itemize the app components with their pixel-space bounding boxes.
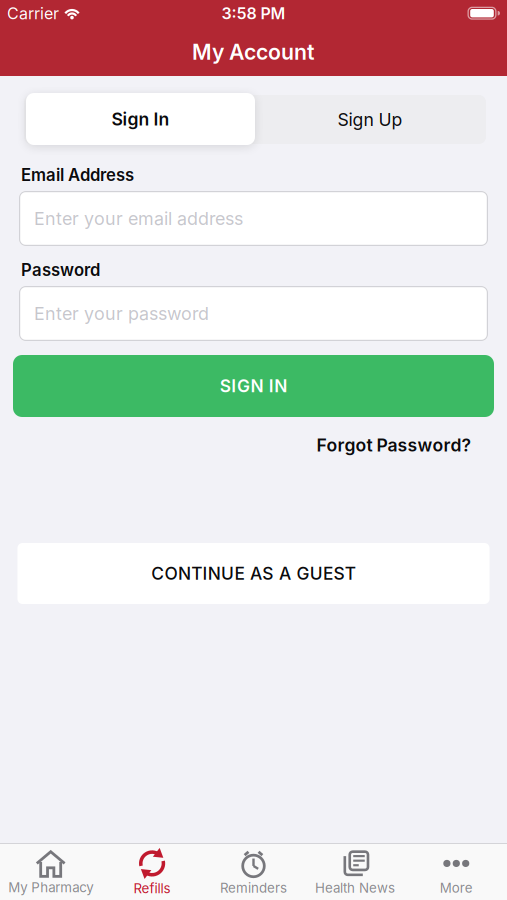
button[interactable]: Password bbox=[19, 286, 488, 341]
button[interactable]: CONTINUE AS A GUEST bbox=[17, 543, 489, 604]
button[interactable]: Email Address bbox=[19, 191, 488, 246]
staticText: Enter your password bbox=[34, 303, 209, 324]
staticText: Password bbox=[21, 260, 100, 280]
button[interactable]: Sign Up bbox=[255, 95, 484, 144]
staticText: Sign In bbox=[111, 108, 169, 130]
button[interactable]: Reminders bbox=[203, 845, 304, 899]
staticText: My Pharmacy bbox=[8, 879, 93, 895]
staticText: Sign Up bbox=[337, 109, 402, 130]
staticText: Refills bbox=[134, 880, 171, 896]
staticText: SIGN IN bbox=[220, 375, 287, 396]
staticText: Forgot Password? bbox=[316, 434, 471, 456]
button[interactable]: Refills bbox=[101, 845, 203, 899]
staticText: Enter your email address bbox=[34, 208, 243, 229]
staticText: Health News bbox=[315, 880, 395, 896]
button[interactable]: Sign In bbox=[26, 93, 255, 145]
button[interactable]: My Pharmacy bbox=[0, 845, 101, 899]
button[interactable]: More bbox=[406, 845, 507, 899]
staticText: 3:58 PM bbox=[221, 4, 285, 23]
button[interactable]: Forgot Password? bbox=[316, 434, 471, 456]
button[interactable]: SIGN IN bbox=[13, 355, 494, 417]
staticText: CONTINUE AS A GUEST bbox=[151, 563, 356, 584]
staticText: My Account bbox=[192, 39, 315, 65]
staticText: Email Address bbox=[21, 165, 134, 185]
staticText: Carrier bbox=[7, 4, 59, 23]
button[interactable]: Health News bbox=[304, 845, 406, 899]
staticText: More bbox=[440, 880, 473, 896]
staticText: Reminders bbox=[220, 880, 287, 896]
